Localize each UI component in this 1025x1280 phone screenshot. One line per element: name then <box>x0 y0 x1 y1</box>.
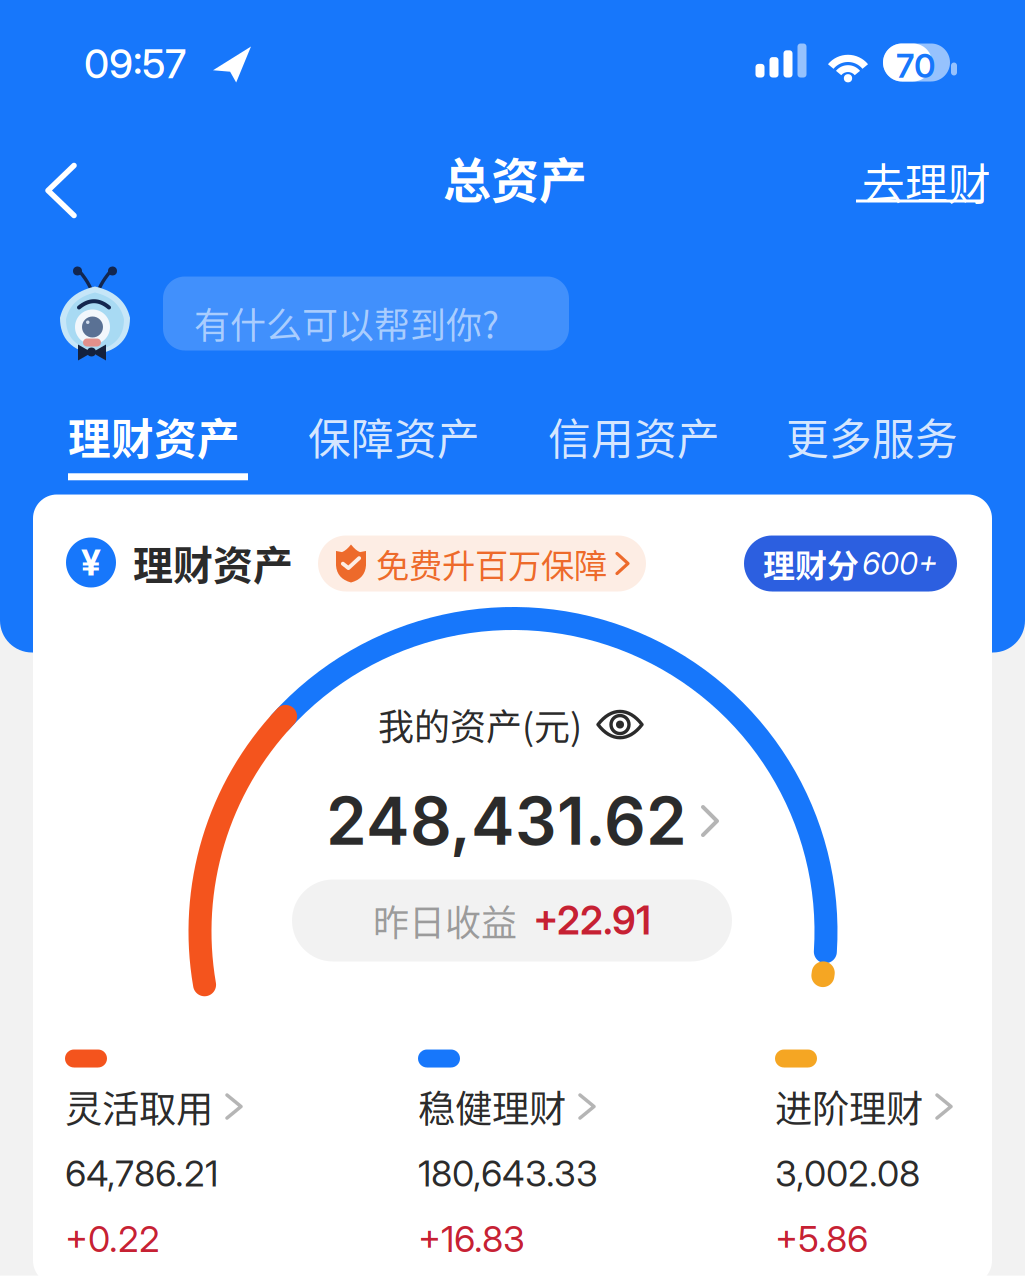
button[interactable]: 稳健理财 <box>418 1049 598 1261</box>
staticText: 昨日收益 <box>373 894 517 946</box>
button[interactable]: 信用资产 <box>544 401 724 471</box>
staticText: 70 <box>896 45 936 86</box>
button[interactable]: 有什么可以帮到你? <box>163 276 569 350</box>
staticText: 248,431.62 <box>326 781 687 860</box>
staticText: 64,786.21 <box>65 1152 218 1195</box>
staticText: 09:57 <box>84 39 186 88</box>
button[interactable]: 进阶理财 <box>775 1049 951 1261</box>
staticText: 灵活取用 <box>65 1079 213 1134</box>
staticText: ¥ <box>81 541 101 584</box>
staticText: 保障资产 <box>308 405 480 467</box>
staticText: 去理财 <box>862 150 991 212</box>
button[interactable]: 理财资产 <box>68 405 248 480</box>
staticText: 稳健理财 <box>418 1079 566 1134</box>
button[interactable]: 248,431.62 <box>326 781 717 860</box>
staticText: 理财分 <box>763 540 859 587</box>
staticText: 进阶理财 <box>775 1079 923 1134</box>
staticText: 信用资产 <box>548 405 720 467</box>
button[interactable]: Back <box>26 143 96 237</box>
staticText: 理财资产 <box>133 533 293 591</box>
staticText: 免费升百万保障 <box>376 539 607 588</box>
button[interactable]: 更多服务 <box>782 401 962 471</box>
staticText: 总资产 <box>443 142 587 212</box>
button[interactable]: 理财分 <box>744 535 957 591</box>
staticText: 180,643.33 <box>418 1152 598 1195</box>
staticText: 有什么可以帮到你? <box>194 297 499 349</box>
staticText: 更多服务 <box>786 405 958 467</box>
button[interactable]: 去理财 <box>856 150 994 212</box>
button[interactable]: 免费升百万保障 <box>318 535 646 591</box>
staticText: 理财资产 <box>68 405 240 467</box>
staticText: +5.86 <box>775 1217 868 1261</box>
staticText: +16.83 <box>418 1217 525 1261</box>
staticText: +0.22 <box>65 1217 160 1261</box>
staticText: +22.91 <box>533 897 651 944</box>
staticText: 600+ <box>862 545 938 582</box>
button[interactable]: Toggle balance visibility <box>378 698 642 751</box>
staticText: 我的资产(元) <box>378 698 582 751</box>
button[interactable]: 昨日收益 <box>292 879 732 961</box>
staticText: 3,002.08 <box>775 1152 920 1195</box>
button[interactable]: 保障资产 <box>304 401 484 471</box>
button[interactable]: 灵活取用 <box>65 1049 241 1261</box>
